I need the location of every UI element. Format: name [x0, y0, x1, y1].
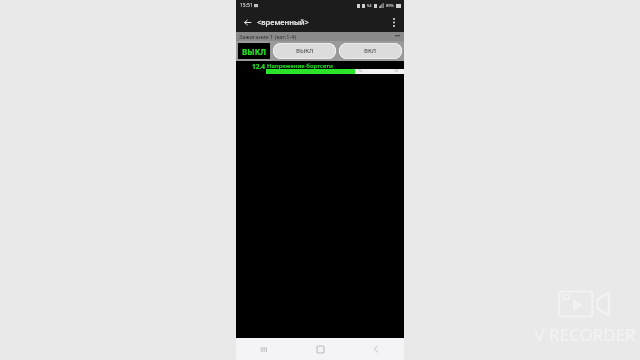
- button[interactable]: Зажигание 1 (кат.1-4): [236, 32, 404, 41]
- staticText: 54: [367, 3, 372, 8]
- staticText: ВЫКЛ: [242, 46, 267, 57]
- button[interactable]: 12.4: [236, 61, 404, 75]
- button[interactable]: Back: [239, 14, 255, 30]
- button[interactable]: More options: [386, 14, 402, 30]
- staticText: 89%: [386, 3, 394, 8]
- staticText: 16: [394, 68, 399, 73]
- button[interactable]: ВКЛ: [339, 43, 402, 59]
- staticText: V RECORDER: [534, 323, 636, 346]
- staticText: Напряжение бортсети: [267, 62, 333, 70]
- button[interactable]: ВЫКЛ: [273, 43, 336, 59]
- staticText: 12.4: [252, 62, 265, 71]
- button[interactable]: Recents: [236, 338, 292, 360]
- button[interactable]: Home: [292, 338, 348, 360]
- staticText: <временный>: [257, 17, 309, 27]
- staticText: Зажигание 1 (кат.1-4): [239, 33, 297, 40]
- staticText: ВЫКЛ: [296, 47, 314, 55]
- button[interactable]: ВЫКЛ: [238, 43, 270, 59]
- staticText: 14: [358, 68, 363, 73]
- staticText: ВКЛ: [364, 47, 377, 55]
- staticText: 15:51: [240, 2, 253, 9]
